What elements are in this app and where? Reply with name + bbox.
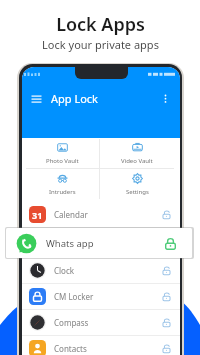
button[interactable]: More options [160,93,171,104]
staticText: Lock your private apps [42,37,159,52]
staticText: App Lock [51,91,98,106]
button[interactable]: Clock [22,258,180,283]
staticText: Photo Vault [46,157,79,165]
staticText: Whats app [46,237,94,250]
staticText: Clock [54,265,75,276]
staticText: Lock Apps [56,12,145,37]
staticText: Video Vault [121,157,153,165]
staticText: Compass [54,317,89,328]
staticText: Intruders [49,188,76,196]
staticText: CM Locker [54,291,94,302]
staticText: Settings [126,188,149,196]
button[interactable]: Contacts [22,336,180,355]
staticText: Contacts [54,343,87,354]
button[interactable]: Photo Vault [26,139,99,168]
button[interactable]: Menu [31,93,42,104]
button[interactable]: Whats app [6,228,192,258]
button[interactable]: Compass [22,310,180,335]
staticText: Calendar [54,209,88,220]
button[interactable]: Settings [100,169,174,199]
staticText: 31 [32,209,43,221]
button[interactable]: Intruders [26,169,99,199]
button[interactable]: 31 [22,202,180,227]
button[interactable]: CM Locker [22,284,180,309]
button[interactable]: Video Vault [100,139,174,168]
